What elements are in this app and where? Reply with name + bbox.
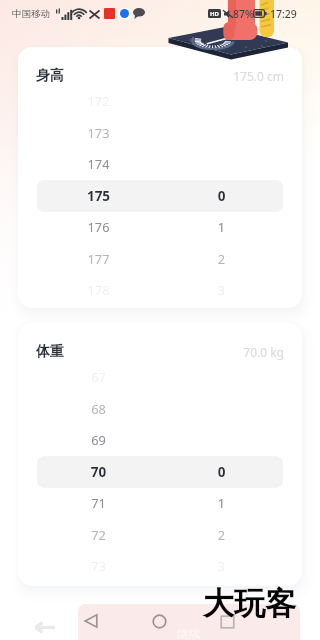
button[interactable]: 71 — [68, 494, 129, 511]
button[interactable]: 0 — [191, 463, 252, 481]
button[interactable]: 172 — [68, 92, 129, 109]
button[interactable]: Home — [152, 614, 167, 629]
button[interactable]: 174 — [68, 155, 129, 172]
button[interactable]: 176 — [68, 218, 129, 235]
button[interactable]: Recents — [220, 615, 235, 629]
button[interactable]: 继续 — [78, 604, 300, 640]
staticText: HD — [210, 10, 219, 18]
button[interactable]: 178 — [68, 281, 129, 298]
button[interactable]: Back — [33, 621, 56, 634]
button[interactable] — [37, 180, 283, 212]
staticText: 大玩客 — [203, 584, 296, 623]
button[interactable]: 70 — [68, 463, 129, 481]
button[interactable]: 68 — [68, 400, 129, 417]
staticText: 体重 — [36, 343, 64, 361]
button[interactable]: 1 — [191, 218, 252, 235]
button[interactable]: 1 — [191, 494, 252, 511]
staticText: 87% — [233, 7, 254, 21]
button[interactable]: 2 — [191, 526, 252, 543]
button[interactable]: 173 — [68, 124, 129, 141]
staticText: 175.0 cm — [204, 68, 284, 84]
staticText: 继续 — [177, 626, 201, 640]
staticText: 中国移动 — [12, 8, 50, 20]
button[interactable]: 72 — [68, 526, 129, 543]
staticText: 70.0 kg — [204, 344, 284, 360]
button[interactable]: 175 — [68, 187, 129, 205]
button[interactable]: 2 — [191, 250, 252, 267]
button[interactable]: 177 — [68, 250, 129, 267]
staticText: 17:29 — [270, 7, 297, 21]
button[interactable] — [37, 456, 283, 488]
staticText: 身高 — [36, 67, 64, 85]
button[interactable]: 69 — [68, 431, 129, 448]
button[interactable]: Back — [84, 613, 98, 629]
button[interactable]: 0 — [191, 187, 252, 205]
